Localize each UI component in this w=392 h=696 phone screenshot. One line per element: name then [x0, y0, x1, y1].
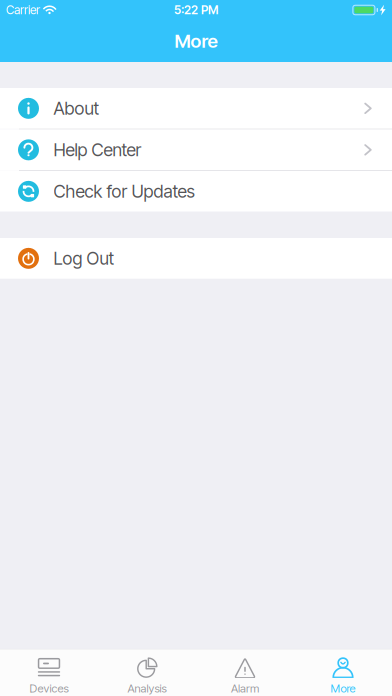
staticText: Log Out — [53, 248, 114, 269]
staticText: Help Center — [53, 139, 141, 160]
staticText: More — [330, 681, 355, 695]
button[interactable]: Log Out — [0, 238, 392, 279]
button[interactable]: More — [294, 650, 392, 696]
staticText: Carrier — [6, 3, 40, 17]
button[interactable]: Check for Updates — [0, 171, 392, 212]
button[interactable]: About — [0, 88, 392, 129]
button[interactable]: Help Center — [0, 129, 392, 170]
staticText: Devices — [29, 681, 68, 695]
staticText: Alarm — [231, 681, 259, 695]
staticText: 5:22 PM — [174, 3, 218, 17]
staticText: About — [53, 98, 99, 119]
button[interactable]: Devices — [0, 650, 98, 696]
button[interactable]: Analysis — [98, 650, 196, 696]
staticText: More — [174, 30, 217, 52]
staticText: Analysis — [127, 681, 166, 695]
staticText: Check for Updates — [53, 181, 194, 202]
button[interactable]: Alarm — [196, 650, 294, 696]
